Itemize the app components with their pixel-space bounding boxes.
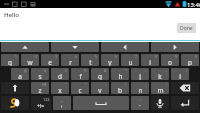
staticText: j <box>139 72 141 80</box>
staticText: Hello <box>4 11 19 19</box>
staticText: c <box>78 86 82 94</box>
staticText: 13:46 <box>187 1 200 9</box>
staticText: : <box>106 83 107 87</box>
staticText: ' <box>66 83 67 87</box>
button[interactable]: v <box>91 82 109 94</box>
button[interactable]: z <box>31 82 49 94</box>
staticText: m <box>157 86 164 94</box>
button[interactable]: w <box>21 54 39 66</box>
staticText: 2 <box>35 55 37 59</box>
button[interactable]: s <box>31 68 49 80</box>
staticText: . <box>139 100 141 108</box>
staticText: + <box>165 69 167 73</box>
button[interactable]: j <box>131 68 149 80</box>
staticText: 9 <box>175 55 177 59</box>
staticText: EN <box>42 83 47 87</box>
button[interactable]: a <box>11 68 29 80</box>
staticText: 123 <box>43 97 50 102</box>
button[interactable]: d <box>51 68 69 80</box>
staticText: 7 <box>135 55 137 59</box>
staticText: z <box>38 86 42 94</box>
button[interactable]: t <box>81 54 99 66</box>
button[interactable]: Done <box>177 23 196 33</box>
button[interactable]: q <box>1 54 19 66</box>
button[interactable]: Cursor up <box>1 42 49 52</box>
button[interactable]: e <box>41 54 59 66</box>
staticText: , <box>61 101 63 109</box>
staticText: k <box>158 72 162 80</box>
button[interactable]: x <box>51 82 69 94</box>
button[interactable]: Symbols <box>31 96 51 110</box>
staticText: & <box>104 69 107 73</box>
staticText: +!= <box>37 103 45 110</box>
button[interactable]: Gesture typing <box>1 96 29 110</box>
staticText: y <box>108 58 112 66</box>
staticText: g <box>98 72 102 80</box>
staticText: 5 <box>95 55 97 59</box>
button[interactable]: u <box>121 54 139 66</box>
button[interactable]: Voice input <box>151 96 169 110</box>
staticText: u <box>128 58 133 66</box>
staticText: 3 <box>55 55 57 59</box>
staticText: f <box>79 72 82 80</box>
button[interactable]: Cursor down <box>51 42 99 52</box>
button[interactable]: f <box>71 68 89 80</box>
staticText: v <box>98 86 102 94</box>
staticText: o <box>168 58 172 66</box>
button[interactable]: g <box>91 68 109 80</box>
button[interactable]: b <box>111 82 129 94</box>
button[interactable]: Backspace <box>171 82 199 94</box>
button[interactable]: c <box>71 82 89 94</box>
button[interactable]: m <box>151 82 169 94</box>
staticText: * <box>125 69 127 73</box>
button[interactable]: i <box>141 54 159 66</box>
button[interactable]: Enter <box>171 96 199 110</box>
button[interactable]: n <box>131 82 149 94</box>
staticText: l <box>179 72 181 80</box>
staticText: 1 <box>15 55 17 59</box>
staticText: @ <box>24 69 27 73</box>
staticText: d <box>58 72 62 80</box>
button[interactable]: k <box>151 68 169 80</box>
staticText: - <box>145 69 147 73</box>
button[interactable]: o <box>161 54 179 66</box>
staticText: e <box>48 58 52 66</box>
button[interactable]: Shift <box>1 82 29 94</box>
staticText: / <box>125 83 127 87</box>
staticText: Done <box>180 25 193 32</box>
staticText: r <box>69 58 72 66</box>
staticText: _ <box>61 97 63 102</box>
staticText: : <box>140 97 141 102</box>
staticText: w <box>27 58 33 66</box>
staticText: p <box>188 58 192 66</box>
staticText: h <box>118 72 123 80</box>
staticText: ( <box>186 69 187 73</box>
button[interactable]: y <box>101 54 119 66</box>
staticText: t <box>89 58 92 66</box>
staticText: 8 <box>155 55 157 59</box>
button[interactable]: Comma <box>53 96 71 110</box>
staticText: x <box>58 86 62 94</box>
staticText: ; <box>146 83 147 87</box>
button[interactable]: l <box>171 68 189 80</box>
staticText: i <box>149 58 151 66</box>
staticText: 6 <box>115 55 117 59</box>
staticText: b <box>118 86 122 94</box>
staticText: % <box>84 69 87 73</box>
staticText: " <box>85 83 87 87</box>
staticText: n <box>138 86 143 94</box>
button[interactable]: r <box>61 54 79 66</box>
staticText: # <box>44 69 47 73</box>
staticText: $ <box>65 69 67 73</box>
button[interactable]: Cursor right <box>151 42 199 52</box>
button[interactable]: Space <box>73 96 129 110</box>
button[interactable]: h <box>111 68 129 80</box>
staticText: s <box>38 72 42 80</box>
staticText: ! <box>166 83 167 87</box>
staticText: q <box>8 58 12 66</box>
staticText: 0 <box>195 55 197 59</box>
staticText: a <box>18 72 22 80</box>
button[interactable]: Cursor left <box>101 42 149 52</box>
button[interactable]: p <box>181 54 199 66</box>
button[interactable]: Period <box>131 96 149 110</box>
